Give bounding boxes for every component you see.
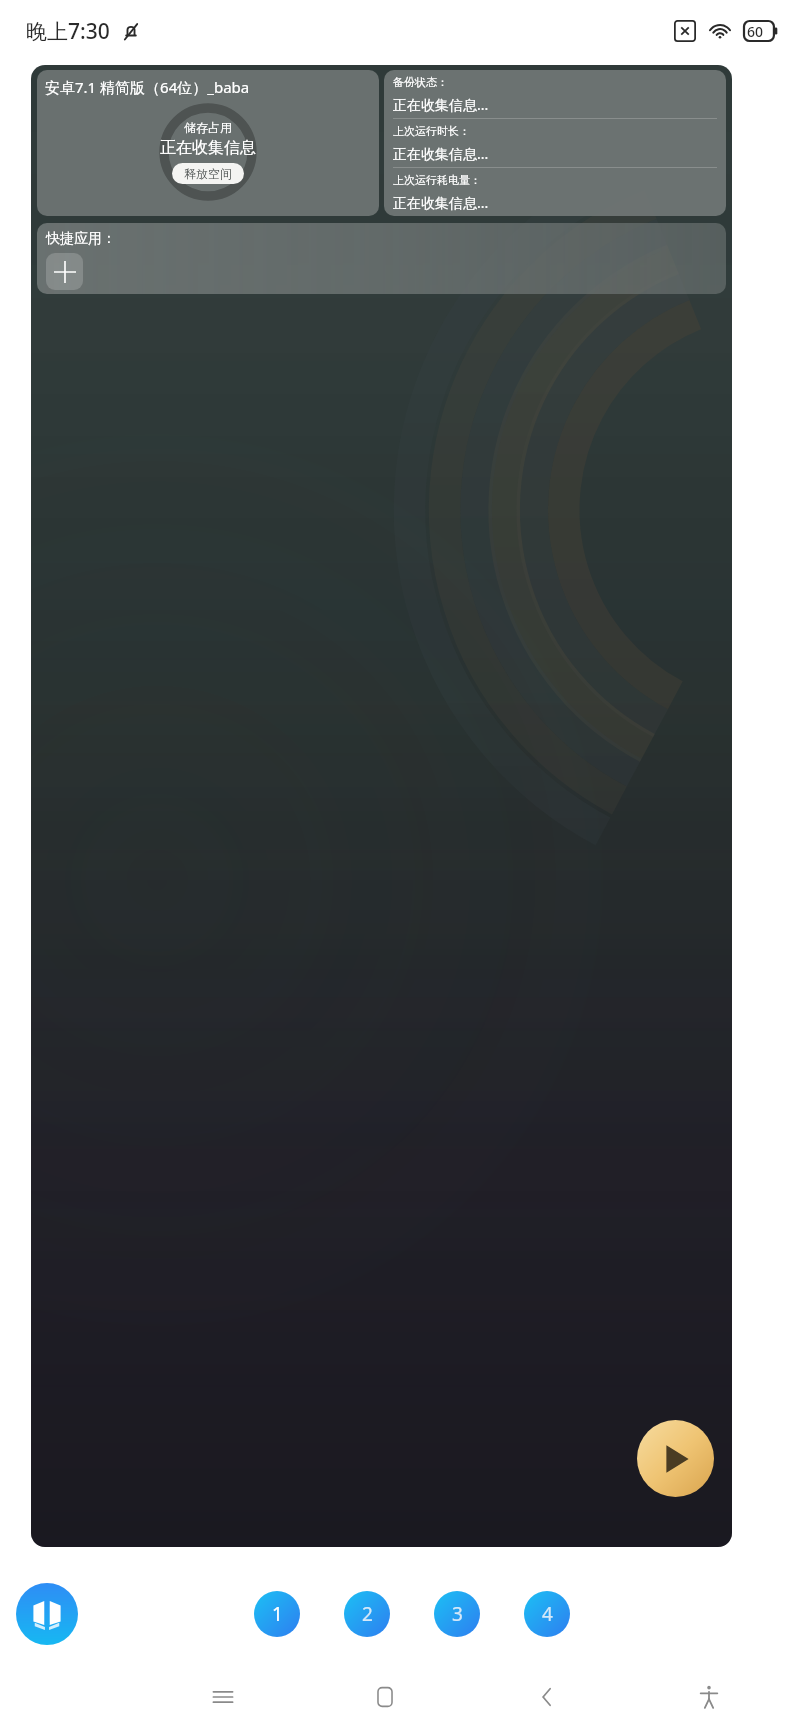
staticText: 正在收集信息... (393, 95, 489, 114)
button[interactable]: 4 (524, 1591, 570, 1637)
button[interactable]: 3 (434, 1591, 480, 1637)
button[interactable]: 安卓7.1 精简版（64位）_baba (37, 70, 379, 216)
staticText: 储存占用 (184, 120, 232, 135)
button[interactable]: 添加快捷应用 (46, 253, 83, 290)
button[interactable]: 应用盒子 (16, 1583, 78, 1645)
button[interactable]: 无障碍 (683, 1671, 735, 1723)
staticText: 2 (362, 1601, 373, 1627)
staticText: 备份状态： (393, 75, 448, 89)
staticText: 正在收集信息... (393, 144, 489, 163)
staticText: 1 (272, 1601, 283, 1627)
staticText: 快捷应用： (46, 230, 116, 248)
staticText: 上次运行时长： (393, 124, 470, 138)
staticText: 正在收集信息... (393, 193, 489, 212)
button[interactable]: 主页 (359, 1671, 411, 1723)
button[interactable]: 返回 (521, 1671, 573, 1723)
staticText: 3 (452, 1601, 463, 1627)
staticText: 60 (747, 22, 764, 41)
button[interactable]: 启动 (637, 1420, 714, 1497)
staticText: 释放空间 (184, 166, 232, 181)
button[interactable]: 1 (254, 1591, 300, 1637)
staticText: 正在收集信息 (160, 138, 256, 158)
button[interactable]: 菜单 (197, 1671, 249, 1723)
button[interactable]: 备份状态： (384, 70, 726, 216)
button[interactable]: 释放空间 (172, 163, 244, 184)
staticText: 4 (542, 1601, 553, 1627)
staticText: 晚上7:30 (26, 17, 110, 46)
staticText: 安卓7.1 精简版（64位）_baba (45, 77, 250, 97)
button[interactable]: 2 (344, 1591, 390, 1637)
staticText: 上次运行耗电量： (393, 173, 481, 187)
